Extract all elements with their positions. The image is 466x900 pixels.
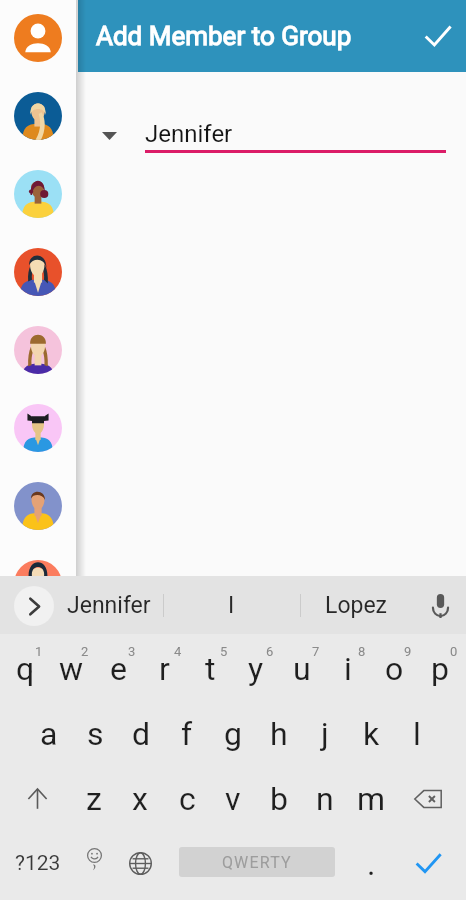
staticText: j — [321, 715, 329, 753]
button[interactable]: w — [48, 636, 94, 701]
button[interactable]: o — [371, 636, 417, 701]
button[interactable]: Voice input — [416, 576, 464, 634]
staticText: o — [385, 650, 404, 688]
button[interactable]: f — [164, 701, 210, 766]
button[interactable]: Add Member to Group — [78, 0, 466, 72]
staticText: h — [270, 715, 288, 753]
button[interactable]: v — [210, 766, 256, 831]
staticText: n — [316, 780, 334, 818]
button[interactable]: q — [2, 636, 48, 701]
staticText: 8 — [358, 644, 366, 659]
button[interactable]: x — [117, 766, 163, 831]
staticText: e — [110, 650, 127, 688]
staticText: QWERTY — [222, 853, 292, 872]
staticText: l — [413, 715, 421, 753]
staticText: c — [179, 780, 196, 818]
staticText: a — [40, 715, 58, 753]
button[interactable]: Dropdown — [83, 110, 135, 162]
staticText: g — [224, 715, 242, 753]
button[interactable]: n — [302, 766, 348, 831]
button[interactable]: Change keyboard language — [117, 831, 163, 896]
button[interactable]: k — [348, 701, 394, 766]
staticText: d — [132, 715, 151, 753]
staticText: Add Member to Group — [96, 21, 406, 51]
button[interactable]: c — [164, 766, 210, 831]
button[interactable]: Backspace — [405, 766, 451, 831]
button[interactable]: e — [95, 636, 141, 701]
staticText: z — [86, 780, 102, 818]
button[interactable]: a — [26, 701, 72, 766]
staticText: 7 — [312, 644, 320, 659]
button[interactable]: m — [348, 766, 394, 831]
button[interactable]: u — [279, 636, 325, 701]
staticText: 3 — [128, 644, 136, 659]
button[interactable]: l — [394, 701, 440, 766]
staticText: k — [363, 715, 380, 753]
staticText: . — [367, 845, 376, 883]
staticText: s — [87, 715, 104, 753]
button[interactable]: Confirm — [406, 6, 466, 66]
staticText: Lopez — [325, 592, 388, 619]
button[interactable]: p — [417, 636, 463, 701]
button[interactable]: g — [210, 701, 256, 766]
staticText: w — [59, 650, 84, 688]
staticText: f — [181, 715, 193, 753]
button[interactable]: Enter — [405, 831, 451, 896]
staticText: p — [431, 650, 449, 688]
button[interactable]: b — [256, 766, 302, 831]
staticText: t — [205, 650, 216, 688]
button[interactable]: Jennifer — [54, 576, 164, 634]
button[interactable]: Lopez — [301, 576, 411, 634]
button[interactable]: t — [187, 636, 233, 701]
staticText: m — [357, 780, 386, 818]
button[interactable]: Emoji — [71, 831, 117, 896]
staticText: 1 — [35, 644, 43, 659]
button[interactable]: I — [176, 576, 286, 634]
button[interactable]: r — [141, 636, 187, 701]
button[interactable]: d — [118, 701, 164, 766]
button[interactable]: i — [325, 636, 371, 701]
staticText: 9 — [404, 644, 412, 659]
staticText: I — [228, 592, 235, 619]
staticText: 2 — [81, 644, 89, 659]
staticText: b — [270, 780, 288, 818]
staticText: q — [16, 650, 35, 688]
staticText: Jennifer — [145, 120, 233, 148]
staticText: ?123 — [15, 851, 61, 876]
staticText: v — [225, 780, 241, 818]
staticText: y — [248, 650, 264, 688]
staticText: Jennifer — [67, 592, 151, 619]
button[interactable]: h — [256, 701, 302, 766]
staticText: 5 — [220, 644, 228, 659]
button[interactable]: QWERTY — [179, 847, 335, 877]
button[interactable]: y — [233, 636, 279, 701]
button[interactable]: Jennifer — [145, 120, 446, 153]
staticText: i — [344, 650, 352, 688]
button[interactable]: ?123 — [12, 831, 64, 896]
button[interactable]: j — [302, 701, 348, 766]
staticText: u — [293, 650, 311, 688]
button[interactable]: Shift — [14, 766, 60, 831]
button[interactable]: s — [72, 701, 118, 766]
button[interactable]: More suggestions — [14, 586, 54, 626]
staticText: x — [132, 780, 148, 818]
staticText: 6 — [266, 644, 274, 659]
staticText: r — [159, 650, 170, 688]
staticText: 0 — [450, 644, 458, 659]
button[interactable]: z — [71, 766, 117, 831]
button[interactable]: . — [348, 831, 394, 896]
staticText: 4 — [174, 644, 182, 659]
